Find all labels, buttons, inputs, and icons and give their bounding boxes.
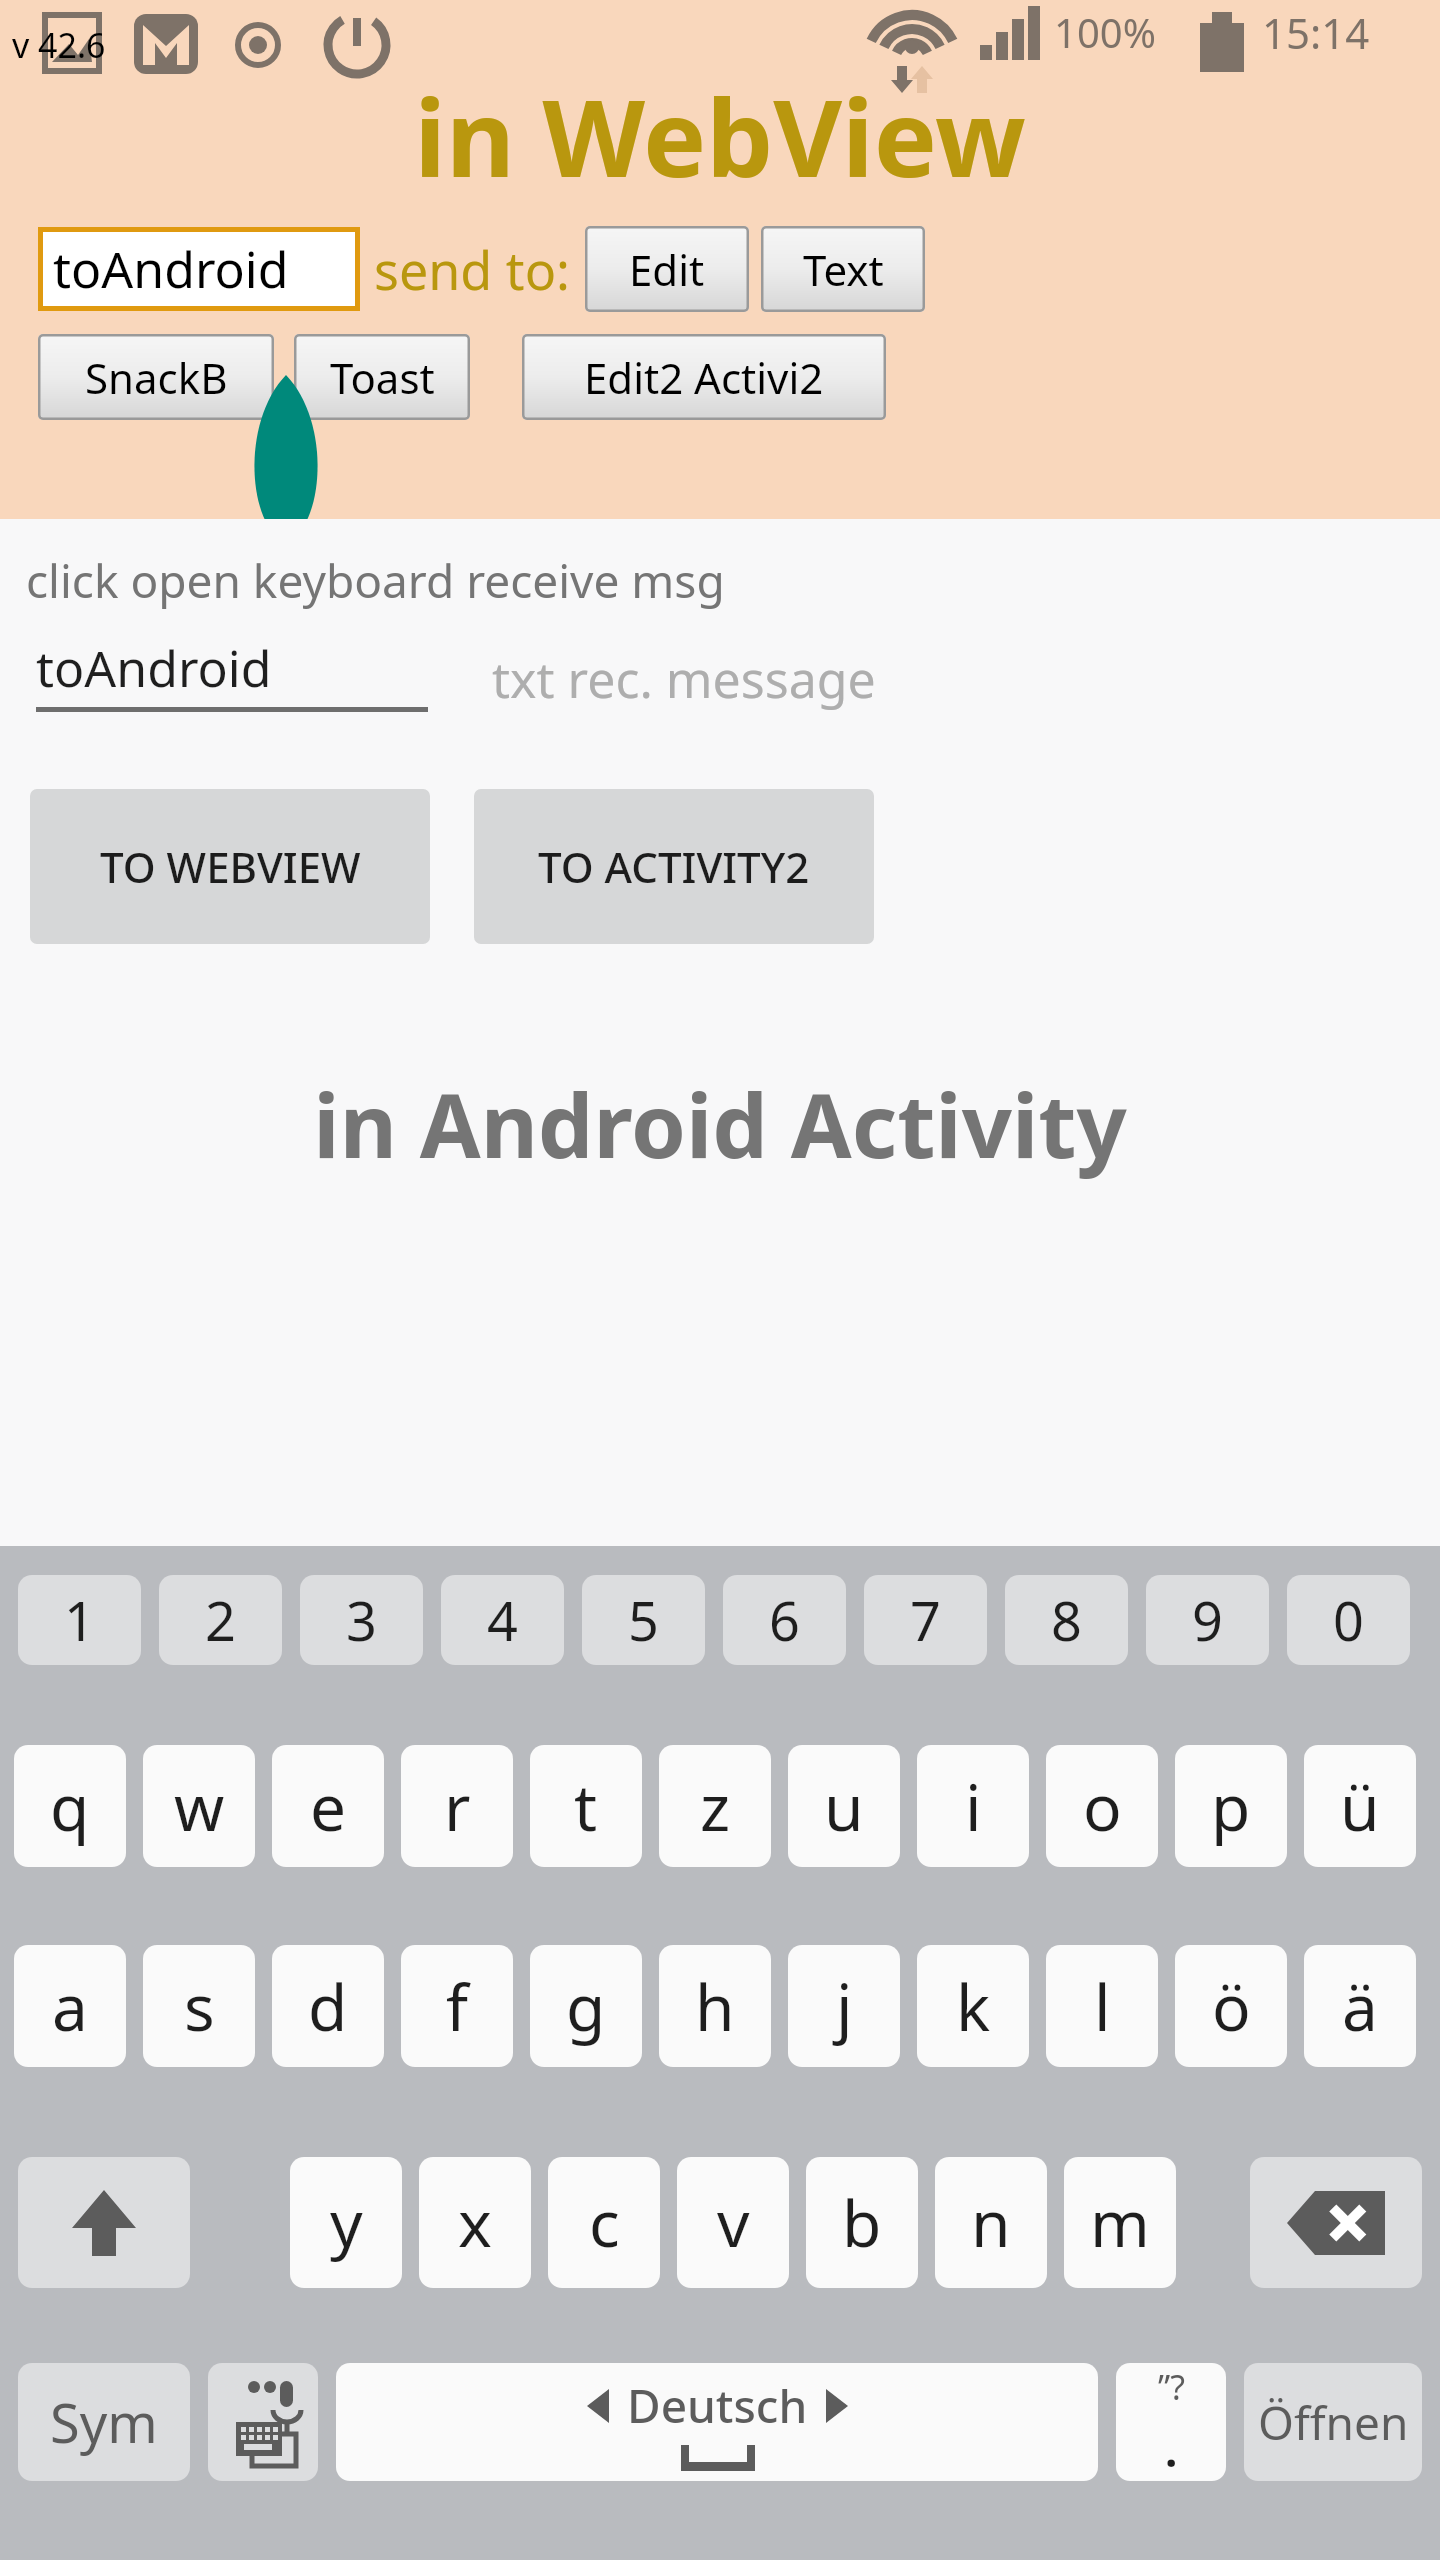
button[interactable]: Backspace <box>1250 2157 1422 2288</box>
button[interactable]: e <box>272 1745 384 1867</box>
staticText: Öffnen <box>1258 2391 1409 2454</box>
staticText: d <box>308 1963 348 2050</box>
button[interactable]: z <box>659 1745 771 1867</box>
button[interactable]: 7 <box>864 1575 987 1665</box>
staticText: m <box>1090 2179 1150 2266</box>
staticText: in Android Activity <box>0 1064 1440 1184</box>
button[interactable]: c <box>548 2157 660 2288</box>
staticText: txt rec. message <box>492 645 876 713</box>
staticText: z <box>700 1763 731 1850</box>
staticText: 0 <box>1333 1583 1364 1657</box>
button[interactable]: x <box>419 2157 531 2288</box>
button[interactable]: ä <box>1304 1945 1416 2067</box>
button[interactable]: TO WEBVIEW <box>30 789 430 944</box>
staticText: f <box>446 1963 469 2050</box>
staticText: Deutsch <box>627 2374 808 2437</box>
staticText: 9 <box>1192 1583 1223 1657</box>
staticText: Toast <box>330 349 435 406</box>
button[interactable]: g <box>530 1945 642 2067</box>
button[interactable]: ü <box>1304 1745 1416 1867</box>
button[interactable]: f <box>401 1945 513 2067</box>
button[interactable]: Change keyboard <box>208 2363 318 2481</box>
staticText: ü <box>1340 1763 1380 1850</box>
button[interactable]: r <box>401 1745 513 1867</box>
button[interactable]: h <box>659 1945 771 2067</box>
button[interactable]: 5 <box>582 1575 705 1665</box>
staticText: in WebView <box>0 64 1440 208</box>
button[interactable]: w <box>143 1745 255 1867</box>
staticText: TO ACTIVITY2 <box>538 838 810 895</box>
staticText: w <box>174 1763 225 1850</box>
button[interactable]: 8 <box>1005 1575 1128 1665</box>
button[interactable]: 3 <box>300 1575 423 1665</box>
staticText: e <box>310 1763 347 1850</box>
button[interactable]: k <box>917 1945 1029 2067</box>
button[interactable]: 2 <box>159 1575 282 1665</box>
staticText: p <box>1211 1763 1251 1850</box>
button[interactable]: b <box>806 2157 918 2288</box>
button[interactable]: Shift <box>18 2157 190 2288</box>
button[interactable]: Öffnen <box>1244 2363 1422 2481</box>
staticText: 6 <box>769 1583 800 1657</box>
button[interactable]: y <box>290 2157 402 2288</box>
staticText: i <box>965 1763 982 1850</box>
button[interactable]: i <box>917 1745 1029 1867</box>
button[interactable]: toAndroid <box>36 629 426 707</box>
button[interactable]: Text <box>761 226 925 312</box>
button[interactable]: 1 <box>18 1575 141 1665</box>
staticText: o <box>1083 1763 1122 1850</box>
button[interactable]: q <box>14 1745 126 1867</box>
button[interactable]: p <box>1175 1745 1287 1867</box>
staticText: h <box>695 1963 735 2050</box>
button[interactable]: ”? <box>1116 2363 1226 2481</box>
button[interactable]: ö <box>1175 1945 1287 2067</box>
staticText: TO WEBVIEW <box>100 838 361 895</box>
staticText: k <box>956 1963 991 2050</box>
button[interactable]: TO ACTIVITY2 <box>474 789 874 944</box>
staticText: b <box>842 2179 882 2266</box>
button[interactable]: Space <box>336 2363 1098 2481</box>
button[interactable]: toAndroid <box>43 232 355 306</box>
staticText: c <box>589 2179 620 2266</box>
staticText: s <box>184 1963 215 2050</box>
button[interactable]: Edit2 Activi2 <box>522 334 886 420</box>
button[interactable]: 4 <box>441 1575 564 1665</box>
staticText: Text <box>803 241 884 298</box>
staticText: SnackB <box>85 349 228 406</box>
staticText: click open keyboard receive msg <box>26 549 725 612</box>
staticText: a <box>52 1963 88 2050</box>
button[interactable]: 0 <box>1287 1575 1410 1665</box>
button[interactable]: u <box>788 1745 900 1867</box>
staticText: g <box>566 1963 606 2050</box>
button[interactable]: Toast <box>294 334 470 420</box>
staticText: 5 <box>628 1583 659 1657</box>
button[interactable]: t <box>530 1745 642 1867</box>
button[interactable]: m <box>1064 2157 1176 2288</box>
button[interactable]: l <box>1046 1945 1158 2067</box>
button[interactable]: Sym <box>18 2363 190 2481</box>
staticText: Sym <box>50 2385 158 2459</box>
button[interactable]: 9 <box>1146 1575 1269 1665</box>
button[interactable]: o <box>1046 1745 1158 1867</box>
button[interactable]: 6 <box>723 1575 846 1665</box>
button[interactable]: Edit <box>585 226 749 312</box>
button[interactable]: s <box>143 1945 255 2067</box>
button[interactable]: j <box>788 1945 900 2067</box>
staticText: j <box>836 1963 853 2050</box>
button[interactable]: SnackB <box>38 334 274 420</box>
button[interactable]: a <box>14 1945 126 2067</box>
staticText: x <box>458 2179 492 2266</box>
staticText: u <box>824 1763 864 1850</box>
staticText: 1 <box>64 1583 95 1657</box>
button[interactable]: d <box>272 1945 384 2067</box>
staticText: r <box>444 1763 471 1850</box>
staticText: 7 <box>910 1583 941 1657</box>
staticText: ä <box>1342 1963 1378 2050</box>
button[interactable]: n <box>935 2157 1047 2288</box>
button[interactable]: v <box>677 2157 789 2288</box>
staticText: t <box>574 1763 598 1850</box>
staticText: ö <box>1212 1963 1251 2050</box>
staticText: 8 <box>1051 1583 1082 1657</box>
staticText: q <box>50 1763 90 1850</box>
staticText: 2 <box>205 1583 236 1657</box>
